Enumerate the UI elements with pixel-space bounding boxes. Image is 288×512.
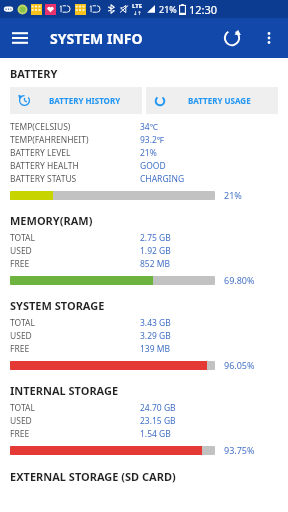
staticText: MEMORY(RAM) <box>10 213 93 228</box>
staticText: 93.2℉ <box>140 134 165 146</box>
button[interactable]: Refresh <box>212 18 252 58</box>
staticText: BATTERY STATUS <box>10 173 77 185</box>
staticText: BATTERY HISTORY <box>49 95 121 106</box>
staticText: SYSTEM INFO <box>50 29 143 48</box>
staticText: 93.75% <box>224 444 255 456</box>
button[interactable]: BATTERY HISTORY <box>10 87 142 114</box>
staticText: 3.43 GB <box>140 317 171 329</box>
staticText: FREE <box>10 428 30 440</box>
staticText: 852 MB <box>140 258 171 270</box>
staticText: INTERNAL STORAGE <box>10 383 119 398</box>
staticText: TEMP(FAHRENHEIT) <box>10 134 89 146</box>
staticText: 21% <box>224 189 242 201</box>
staticText: 2.75 GB <box>140 232 171 244</box>
staticText: TOTAL <box>10 317 35 329</box>
staticText: USED <box>10 415 32 427</box>
staticText: BATTERY <box>10 66 58 81</box>
staticText: 24.70 GB <box>140 402 176 414</box>
staticText: 34℃ <box>140 121 159 133</box>
staticText: CHARGING <box>140 173 185 185</box>
staticText: GOOD <box>140 160 166 172</box>
staticText: 21% <box>140 147 157 159</box>
button[interactable]: More options <box>252 21 286 55</box>
staticText: 69.80% <box>224 274 255 286</box>
staticText: EXTERNAL STORAGE (SD CARD) <box>10 469 176 484</box>
staticText: 3.29 GB <box>140 330 171 342</box>
staticText: FREE <box>10 343 30 355</box>
staticText: BATTERY USAGE <box>188 95 251 106</box>
staticText: BATTERY HEALTH <box>10 160 79 172</box>
staticText: 96.05% <box>224 359 255 371</box>
staticText: BATTERY LEVEL <box>10 147 71 159</box>
staticText: TOTAL <box>10 232 35 244</box>
staticText: FREE <box>10 258 30 270</box>
staticText: SYSTEM STORAGE <box>10 298 105 313</box>
staticText: 1.92 GB <box>140 245 171 257</box>
staticText: USED <box>10 330 32 342</box>
staticText: 12:30 <box>189 2 218 17</box>
staticText: ↓↑ <box>133 10 142 16</box>
staticText: 1.54 GB <box>140 428 171 440</box>
staticText: 139 MB <box>140 343 171 355</box>
staticText: TOTAL <box>10 402 35 414</box>
staticText: 21% <box>159 3 177 15</box>
staticText: USED <box>10 245 32 257</box>
button[interactable]: BATTERY USAGE <box>146 87 278 114</box>
button[interactable]: Open navigation menu <box>0 18 40 58</box>
staticText: 23.15 GB <box>140 415 176 427</box>
staticText: LTE <box>132 2 143 10</box>
staticText: TEMP(CELSIUS) <box>10 121 71 133</box>
